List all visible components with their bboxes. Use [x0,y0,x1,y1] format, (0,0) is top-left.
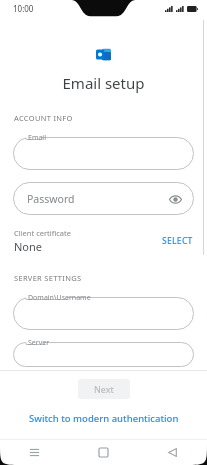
staticText: Email [28,133,46,143]
button[interactable]: Back [138,439,207,465]
button[interactable]: Password [13,182,194,215]
button[interactable]: Email [13,137,194,170]
staticText: 10:00 [13,3,34,14]
staticText: Domain\Username [28,293,91,303]
staticText: SERVER SETTINGS [14,273,82,283]
staticText: Email setup [0,73,207,93]
button[interactable]: Next [78,379,130,399]
button[interactable]: Domain\Username [13,297,194,330]
button[interactable]: Home [69,439,138,465]
staticText: Client certificate [14,228,71,238]
button[interactable]: Server [13,342,194,367]
staticText: Server [28,338,50,348]
staticText: ACCOUNT INFO [14,113,73,123]
button[interactable]: Recents [0,439,69,465]
button[interactable]: Client certificate [0,228,207,254]
staticText: Password [27,192,75,206]
button[interactable]: Switch to modern authentication [23,410,185,427]
button[interactable]: SELECT [162,235,193,247]
staticText: Next [94,383,114,395]
staticText: Switch to modern authentication [29,412,179,425]
staticText: None [14,239,43,254]
button[interactable]: Show password [166,190,184,208]
